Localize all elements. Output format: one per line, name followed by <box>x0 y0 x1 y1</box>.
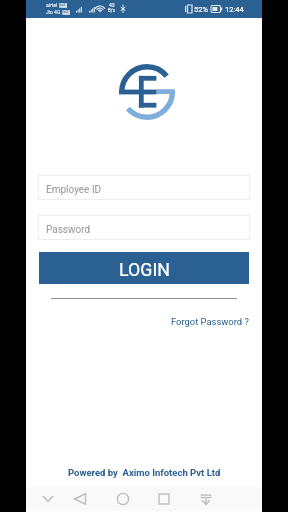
staticText: LOGIN <box>119 259 170 280</box>
staticText: airtel <box>46 2 58 8</box>
staticText: Jio 4G <box>46 9 61 15</box>
staticText: VoLTE <box>59 3 67 8</box>
button[interactable]: Home <box>111 487 135 511</box>
staticText: B/s <box>108 8 115 13</box>
button[interactable]: Recents <box>152 487 176 511</box>
button[interactable]: Forgot Password ? <box>169 314 251 329</box>
staticText: Powered by Aximo Infotech Pvt Ltd <box>68 467 221 478</box>
button[interactable]: LOGIN <box>39 252 249 284</box>
staticText: Forgot Password ? <box>171 316 249 327</box>
button[interactable]: Password <box>38 215 250 240</box>
staticText: VoLTE <box>62 10 70 15</box>
button[interactable]: Hide keyboard <box>36 487 60 511</box>
staticText: 12:44 <box>225 5 244 14</box>
button[interactable]: Employee ID <box>38 175 250 200</box>
staticText: Employee ID <box>46 184 102 196</box>
staticText: 43 <box>109 2 115 8</box>
staticText: 52% <box>194 5 208 14</box>
button[interactable]: Back <box>68 487 92 511</box>
staticText: Password <box>46 224 91 236</box>
button[interactable]: Download <box>194 487 218 511</box>
